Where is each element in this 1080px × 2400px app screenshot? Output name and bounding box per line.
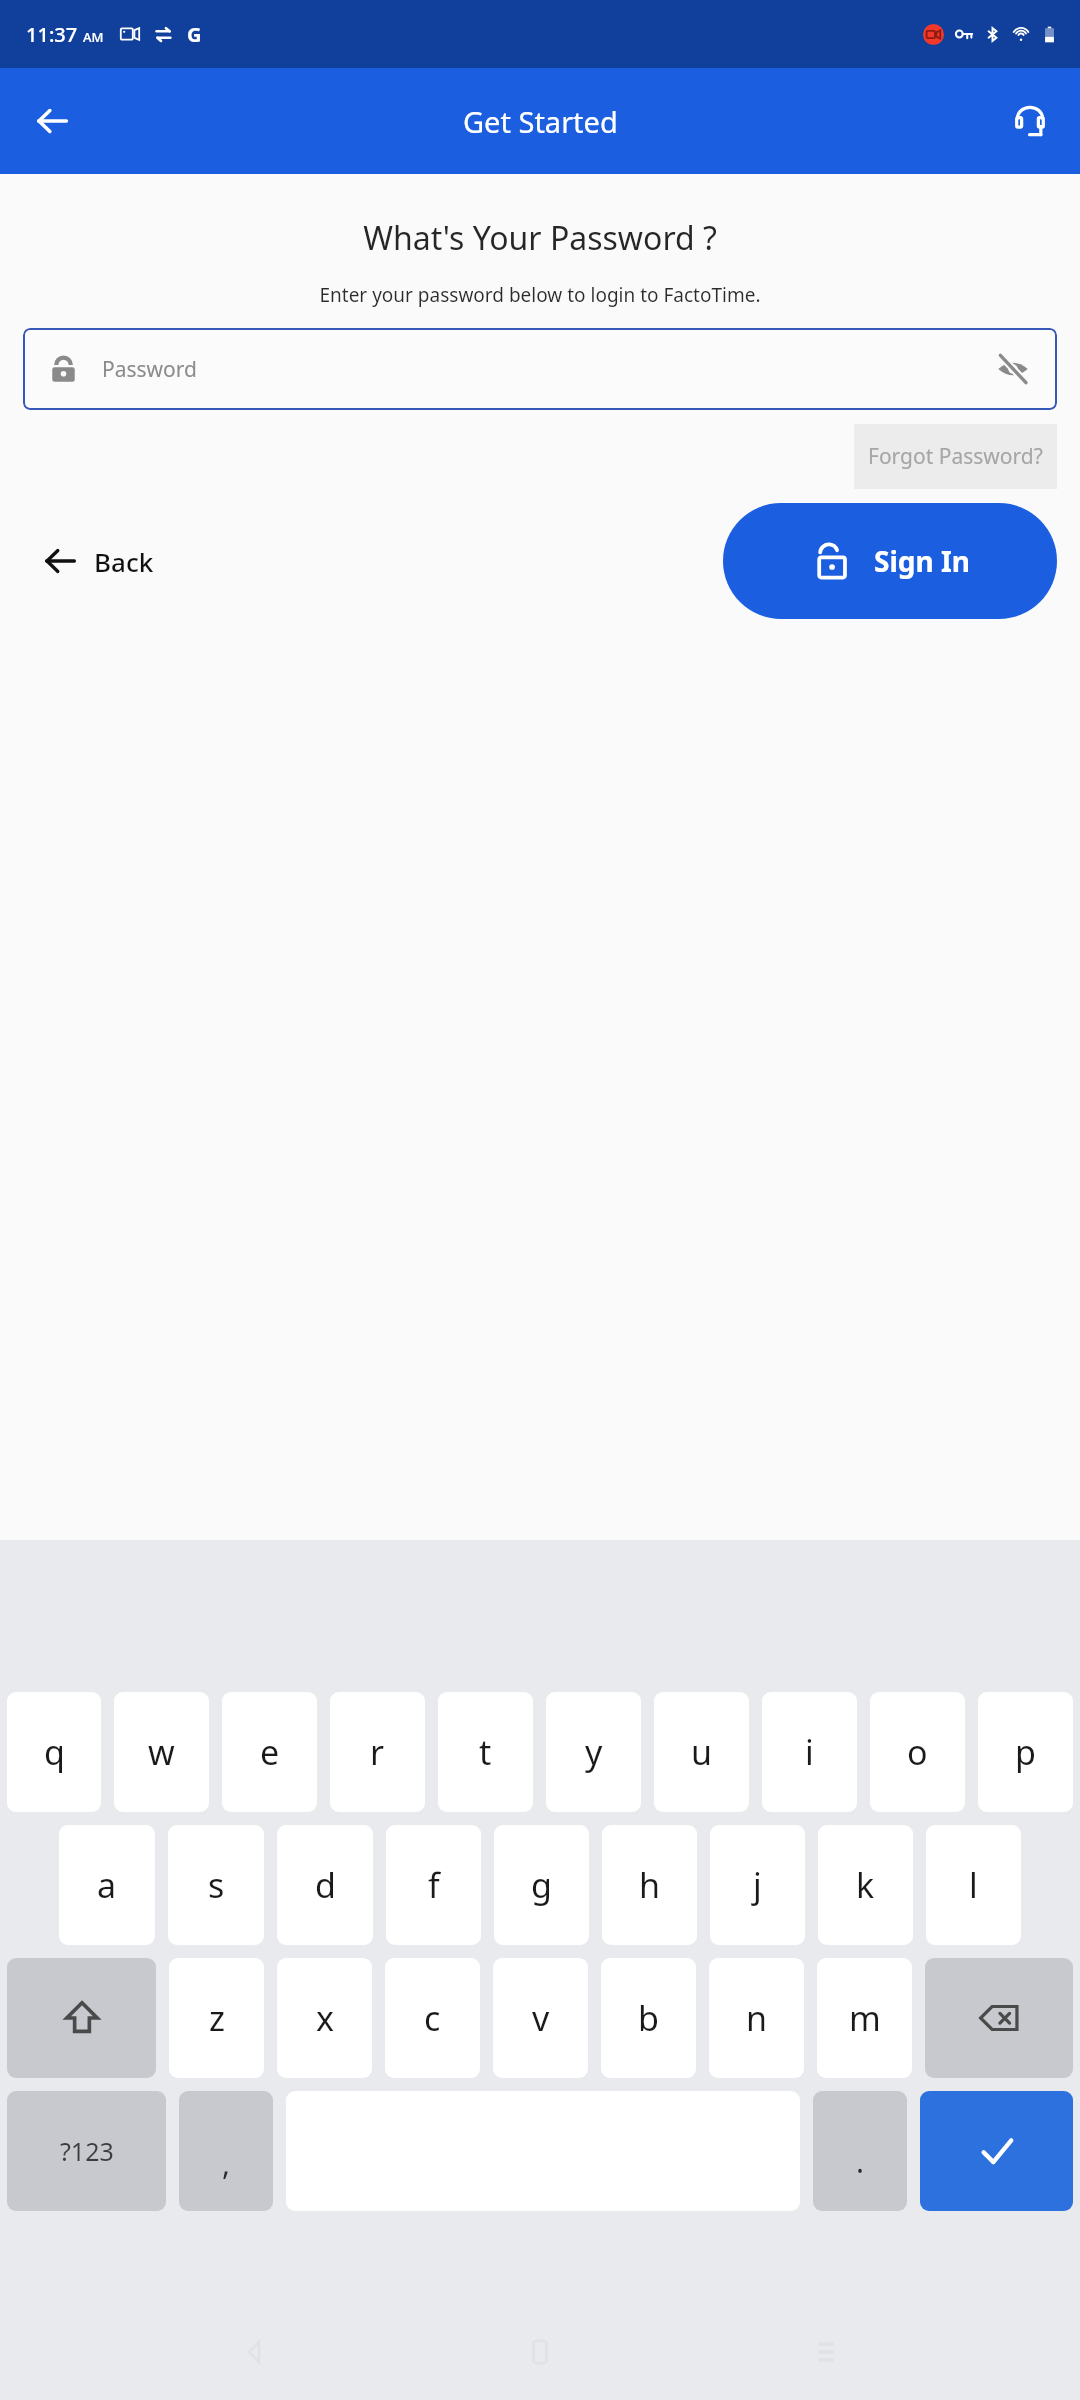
staticText: AM xyxy=(83,28,104,46)
button[interactable]: , xyxy=(179,2091,273,2211)
staticText: p xyxy=(1015,1729,1036,1775)
button[interactable]: o xyxy=(870,1692,965,1812)
button[interactable]: b xyxy=(601,1958,696,2078)
staticText: l xyxy=(969,1862,978,1908)
staticText: m xyxy=(849,1995,881,2041)
staticText: v xyxy=(532,1995,550,2041)
button[interactable]: y xyxy=(546,1692,641,1812)
staticText: 11:37 xyxy=(26,21,78,48)
button[interactable]: Password xyxy=(23,328,1057,410)
staticText: a xyxy=(97,1862,117,1908)
staticText: q xyxy=(44,1729,65,1775)
button[interactable]: q xyxy=(7,1692,101,1812)
staticText: c xyxy=(424,1995,441,2041)
button[interactable]: c xyxy=(385,1958,480,2078)
button[interactable]: t xyxy=(438,1692,533,1812)
button[interactable]: Backspace xyxy=(925,1958,1073,2078)
button[interactable]: h xyxy=(602,1825,697,1945)
staticText: Forgot Password? xyxy=(868,442,1043,471)
staticText: d xyxy=(315,1862,336,1908)
button[interactable]: w xyxy=(114,1692,209,1812)
button[interactable]: n xyxy=(709,1958,804,2078)
button[interactable]: Sign In xyxy=(723,503,1057,619)
button[interactable]: r xyxy=(330,1692,425,1812)
staticText: , xyxy=(222,2143,231,2184)
staticText: h xyxy=(639,1862,661,1908)
button[interactable]: v xyxy=(493,1958,588,2078)
button[interactable]: f xyxy=(386,1825,481,1945)
staticText: . xyxy=(856,2141,865,2182)
button[interactable]: i xyxy=(762,1692,857,1812)
staticText: b xyxy=(638,1995,659,2041)
button[interactable]: Back xyxy=(20,89,84,153)
staticText: y xyxy=(585,1729,603,1775)
button[interactable]: e xyxy=(222,1692,317,1812)
button[interactable]: m xyxy=(817,1958,912,2078)
staticText: k xyxy=(856,1862,875,1908)
staticText: What's Your Password ? xyxy=(363,216,717,260)
button[interactable]: d xyxy=(277,1825,373,1945)
staticText: g xyxy=(531,1862,552,1908)
button[interactable]: s xyxy=(168,1825,264,1945)
staticText: ?123 xyxy=(60,2134,114,2168)
staticText: t xyxy=(479,1729,492,1775)
button[interactable]: x xyxy=(277,1958,372,2078)
staticText: x xyxy=(316,1995,334,2041)
button[interactable]: k xyxy=(818,1825,913,1945)
button[interactable]: ?123 xyxy=(7,2091,166,2211)
staticText: i xyxy=(805,1729,814,1775)
button[interactable]: g xyxy=(494,1825,589,1945)
staticText: f xyxy=(428,1862,440,1908)
button[interactable]: Enter xyxy=(920,2091,1073,2211)
button[interactable]: Back xyxy=(32,531,164,591)
staticText: n xyxy=(746,1995,768,2041)
button[interactable]: j xyxy=(710,1825,805,1945)
staticText: w xyxy=(148,1729,175,1775)
staticText: G xyxy=(187,21,202,48)
staticText: Get Started xyxy=(463,102,618,141)
staticText: o xyxy=(907,1729,928,1775)
button[interactable]: p xyxy=(978,1692,1073,1812)
button[interactable]: l xyxy=(926,1825,1021,1945)
button[interactable]: z xyxy=(169,1958,264,2078)
staticText: u xyxy=(691,1729,713,1775)
staticText: r xyxy=(370,1729,385,1775)
button[interactable]: u xyxy=(654,1692,749,1812)
staticText: Back xyxy=(94,544,154,579)
button[interactable]: Forgot Password? xyxy=(854,424,1057,489)
button[interactable]: Customer support xyxy=(998,89,1062,153)
button[interactable]: Show password xyxy=(989,345,1037,393)
staticText: e xyxy=(260,1729,280,1775)
button[interactable]: Shift xyxy=(7,1958,156,2078)
staticText: Sign In xyxy=(874,542,971,580)
button[interactable]: . xyxy=(813,2091,907,2211)
staticText: z xyxy=(209,1995,225,2041)
staticText: Enter your password below to login to Fa… xyxy=(319,282,761,308)
staticText: j xyxy=(753,1862,762,1908)
staticText: s xyxy=(208,1862,225,1908)
button[interactable]: a xyxy=(59,1825,155,1945)
staticText: Password xyxy=(102,355,197,384)
